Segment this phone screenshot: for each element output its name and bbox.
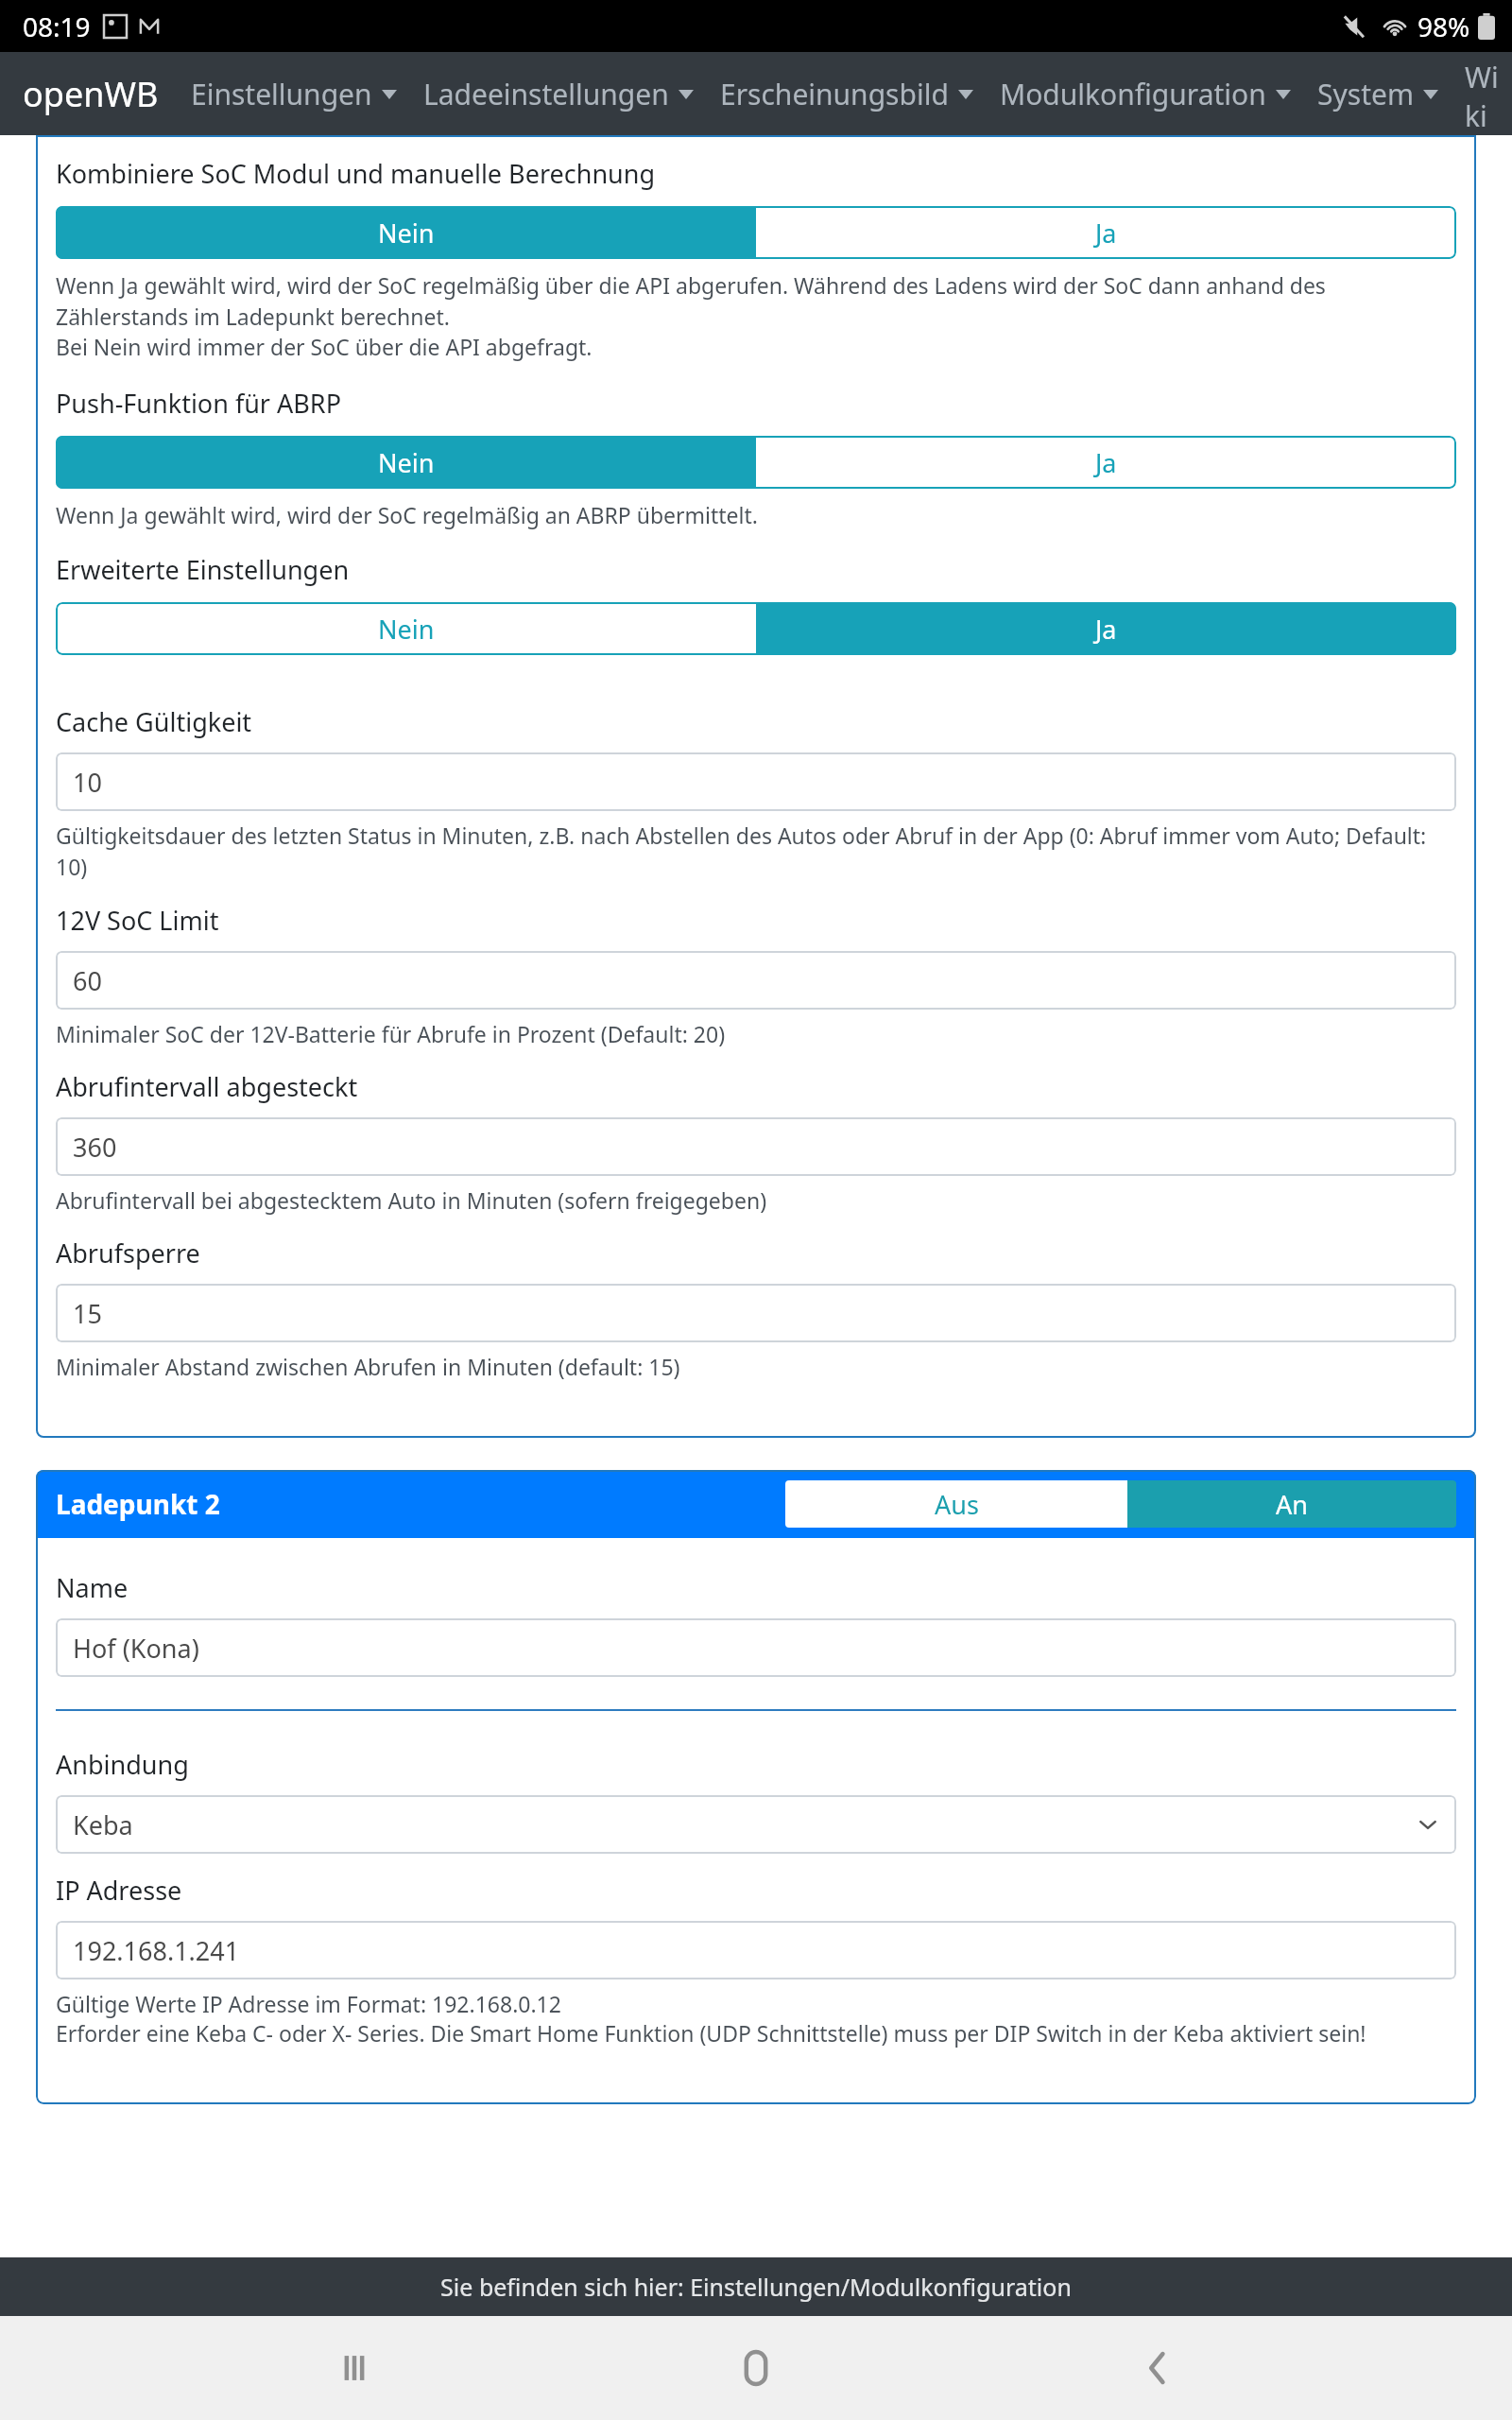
button[interactable]: 192.168.1.241	[56, 1921, 1456, 1979]
button[interactable]: Keba	[56, 1795, 1456, 1854]
button[interactable]: Back	[1110, 2321, 1205, 2415]
button[interactable]: Wiki	[1465, 52, 1512, 135]
staticText: 08:19	[23, 9, 91, 44]
button[interactable]: Einstellungen	[191, 69, 397, 119]
staticText: 10	[73, 765, 102, 800]
staticText: Abrufintervall bei abgestecktem Auto in …	[56, 1185, 767, 1215]
button[interactable]: Recent apps	[307, 2321, 402, 2415]
staticText: Abrufsperre	[56, 1236, 200, 1270]
button[interactable]: Ja	[756, 436, 1456, 489]
staticText: Keba	[73, 1807, 133, 1842]
button[interactable]: System	[1317, 69, 1438, 119]
staticText: Wenn Ja gewählt wird, wird der SoC regel…	[56, 270, 1456, 332]
button[interactable]: 10	[56, 752, 1456, 811]
button[interactable]: An	[1127, 1480, 1456, 1528]
button[interactable]: Nein	[56, 602, 756, 655]
staticText: 12V SoC Limit	[56, 903, 219, 938]
button[interactable]: Nein	[56, 436, 756, 489]
staticText: Ladeeinstellungen	[423, 75, 669, 113]
button[interactable]: Modulkonfiguration	[1000, 69, 1291, 119]
staticText: Erweiterte Einstellungen	[56, 552, 350, 587]
staticText: Kombiniere SoC Modul und manuelle Berech…	[56, 156, 656, 191]
staticText: 360	[73, 1130, 117, 1165]
staticText: Ladepunkt 2	[56, 1486, 220, 1522]
staticText: Aus	[935, 1487, 979, 1522]
staticText: 15	[73, 1296, 102, 1331]
staticText: Ja	[1095, 612, 1117, 647]
button[interactable]: Nein	[56, 206, 756, 259]
staticText: Gültige Werte IP Adresse im Format: 192.…	[56, 1989, 561, 2018]
staticText: Name	[56, 1570, 129, 1605]
staticText: 192.168.1.241	[73, 1933, 240, 1968]
staticText: Push-Funktion für ABRP	[56, 386, 341, 421]
staticText: Nein	[378, 216, 435, 251]
staticText: Erscheinungsbild	[720, 75, 949, 113]
staticText: Wiki	[1465, 58, 1512, 130]
staticText: Hof (Kona)	[73, 1631, 199, 1666]
staticText: System	[1317, 75, 1414, 113]
staticText: Nein	[378, 612, 435, 647]
staticText: Modulkonfiguration	[1000, 75, 1266, 113]
staticText: Minimaler Abstand zwischen Abrufen in Mi…	[56, 1352, 680, 1381]
button[interactable]: Ja	[756, 206, 1456, 259]
button[interactable]: 360	[56, 1117, 1456, 1176]
staticText: 98%	[1417, 9, 1470, 44]
staticText: Cache Gültigkeit	[56, 704, 252, 739]
button[interactable]: Home	[709, 2321, 803, 2415]
button[interactable]: openWB	[23, 71, 159, 117]
staticText: Nein	[378, 445, 435, 480]
button[interactable]: Erscheinungsbild	[720, 69, 973, 119]
staticText: An	[1276, 1487, 1308, 1522]
button[interactable]: Sie befinden sich hier: Einstellungen/Mo…	[0, 2257, 1512, 2316]
staticText: Anbindung	[56, 1747, 189, 1782]
staticText: openWB	[23, 71, 159, 117]
staticText: 60	[73, 963, 102, 998]
staticText: Ja	[1095, 445, 1117, 480]
staticText: IP Adresse	[56, 1873, 182, 1908]
button[interactable]: Aus	[785, 1480, 1127, 1528]
staticText: Ja	[1095, 216, 1117, 251]
button[interactable]: 15	[56, 1284, 1456, 1342]
staticText: Gültigkeitsdauer des letzten Status in M…	[56, 821, 1456, 882]
button[interactable]: Hof (Kona)	[56, 1618, 1456, 1677]
staticText: Sie befinden sich hier: Einstellungen/Mo…	[440, 2271, 1072, 2303]
button[interactable]: Ladeeinstellungen	[423, 69, 694, 119]
staticText: Abrufintervall abgesteckt	[56, 1069, 358, 1104]
staticText: Wenn Ja gewählt wird, wird der SoC regel…	[56, 500, 758, 529]
staticText: Bei Nein wird immer der SoC über die API…	[56, 332, 593, 361]
button[interactable]: Ja	[756, 602, 1456, 655]
staticText: Minimaler SoC der 12V-Batterie für Abruf…	[56, 1019, 726, 1048]
staticText: Erforder eine Keba C- oder X- Series. Di…	[56, 2018, 1366, 2048]
button[interactable]: 60	[56, 951, 1456, 1010]
staticText: Einstellungen	[191, 75, 372, 113]
